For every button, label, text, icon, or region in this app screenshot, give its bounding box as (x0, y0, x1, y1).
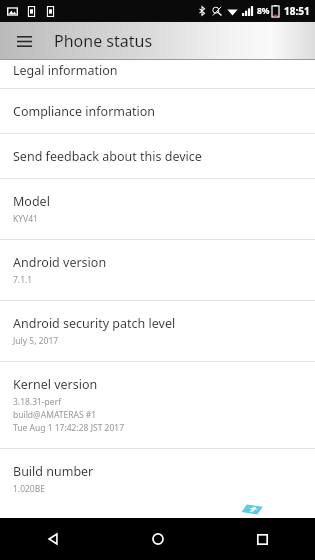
staticText: 3.18.31-perf (13, 396, 62, 408)
button[interactable]: Compliance information (0, 89, 315, 133)
staticText: Phone status (54, 30, 153, 52)
staticText: build@AMATERAS #1 (13, 409, 97, 421)
staticText: July 5, 2017 (13, 335, 59, 347)
staticText: Send feedback about this device (13, 148, 202, 165)
button[interactable]: Model (0, 179, 315, 239)
staticText: Kernel version (13, 376, 98, 393)
staticText: 7.1.1 (13, 274, 33, 286)
staticText: 1.020BE (13, 483, 45, 495)
staticText: Compliance information (13, 103, 156, 120)
staticText: 8% (257, 5, 270, 17)
staticText: Model (13, 193, 50, 210)
staticText: Android version (13, 254, 107, 271)
button[interactable]: Build number (0, 449, 315, 509)
staticText: Build number (13, 463, 94, 480)
button[interactable]: Home (105, 518, 210, 560)
button[interactable]: Recent apps (210, 518, 315, 560)
button[interactable]: Android security patch level (0, 301, 315, 361)
staticText: Android security patch level (13, 315, 176, 332)
button[interactable]: Send feedback about this device (0, 134, 315, 178)
staticText: 18:51 (284, 4, 310, 18)
button[interactable]: Kernel version (0, 362, 315, 448)
button[interactable]: Legal information (0, 60, 315, 88)
staticText: Tue Aug 1 17:42:28 JST 2017 (13, 422, 125, 434)
button[interactable]: Android version (0, 240, 315, 300)
button[interactable]: Open navigation menu (9, 26, 39, 56)
button[interactable]: Back (0, 518, 105, 560)
staticText: KYV41 (13, 213, 38, 225)
staticText: Legal information (13, 62, 118, 79)
